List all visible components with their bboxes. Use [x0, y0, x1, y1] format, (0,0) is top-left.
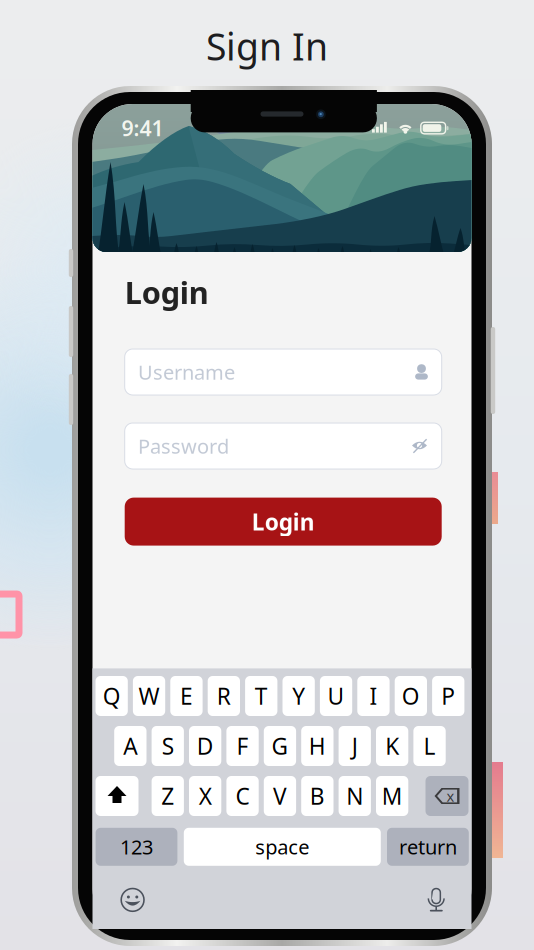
button[interactable]: Password — [125, 423, 442, 469]
button[interactable]: Dictate — [427, 888, 445, 913]
staticText: N — [346, 781, 363, 811]
button[interactable]: Emoji keyboard — [120, 887, 145, 912]
button[interactable]: G — [264, 726, 296, 766]
button[interactable]: H — [301, 726, 333, 766]
button[interactable]: U — [320, 676, 352, 716]
button[interactable]: V — [264, 776, 296, 816]
button[interactable]: E — [170, 676, 203, 716]
staticText: D — [197, 731, 214, 761]
staticText: M — [382, 781, 403, 811]
staticText: B — [310, 781, 325, 811]
button[interactable]: B — [301, 776, 333, 816]
staticText: space — [255, 833, 309, 860]
staticText: R — [217, 681, 231, 711]
staticText: U — [327, 681, 344, 711]
staticText: Sign In — [206, 21, 328, 71]
button[interactable]: 123 — [96, 828, 177, 866]
staticText: 123 — [120, 833, 153, 860]
staticText: G — [271, 731, 288, 761]
button[interactable]: Q — [95, 676, 128, 716]
staticText: Password — [138, 433, 229, 459]
staticText: Y — [292, 681, 305, 711]
staticText: O — [402, 681, 420, 711]
button[interactable]: D — [189, 726, 221, 766]
staticText: X — [199, 781, 212, 811]
button[interactable]: space — [184, 828, 381, 866]
staticText: L — [423, 731, 435, 761]
staticText: I — [369, 681, 377, 711]
button[interactable]: R — [208, 676, 240, 716]
staticText: F — [236, 731, 248, 761]
button[interactable]: T — [245, 676, 277, 716]
staticText: Username — [138, 359, 235, 385]
button[interactable]: Login — [125, 498, 442, 546]
staticText: P — [441, 681, 455, 711]
staticText: return — [399, 833, 457, 860]
button[interactable]: S — [152, 726, 184, 766]
button[interactable]: K — [376, 726, 408, 766]
staticText: x — [446, 786, 454, 806]
staticText: A — [123, 731, 137, 761]
button[interactable]: return — [387, 828, 469, 866]
staticText: W — [139, 681, 160, 711]
button[interactable]: Shift — [95, 776, 138, 816]
staticText: 9:41 — [121, 114, 163, 142]
button[interactable]: Y — [282, 676, 315, 716]
button[interactable]: Delete — [425, 776, 468, 816]
staticText: J — [352, 731, 358, 761]
button[interactable]: J — [339, 726, 371, 766]
staticText: C — [235, 781, 249, 811]
button[interactable]: L — [413, 726, 446, 766]
button[interactable]: X — [189, 776, 221, 816]
staticText: E — [180, 681, 193, 711]
staticText: K — [385, 731, 399, 761]
staticText: Login — [125, 272, 209, 312]
button[interactable]: F — [226, 726, 259, 766]
button[interactable]: A — [114, 726, 146, 766]
button[interactable]: M — [376, 776, 408, 816]
staticText: Q — [103, 681, 121, 711]
staticText: H — [309, 731, 326, 761]
staticText: S — [162, 731, 174, 761]
button[interactable]: Z — [152, 776, 184, 816]
staticText: Z — [161, 781, 174, 811]
staticText: T — [255, 681, 268, 711]
button[interactable]: P — [432, 676, 464, 716]
button[interactable]: I — [357, 676, 390, 716]
button[interactable]: W — [133, 676, 165, 716]
button[interactable]: C — [226, 776, 259, 816]
staticText: V — [273, 781, 287, 811]
button[interactable]: Username — [125, 349, 442, 395]
button[interactable]: O — [395, 676, 427, 716]
staticText: Login — [252, 506, 315, 537]
button[interactable]: N — [339, 776, 371, 816]
